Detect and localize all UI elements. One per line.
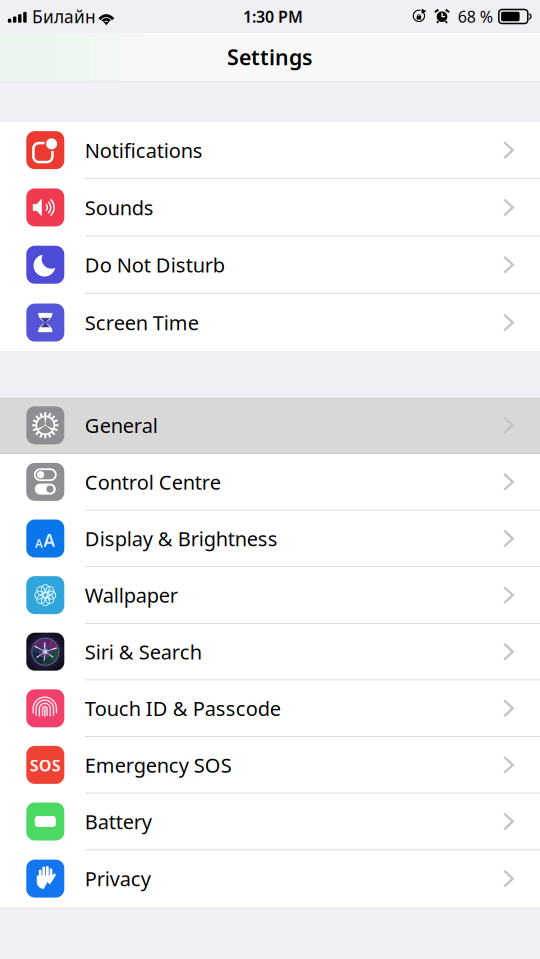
staticText: General	[85, 412, 158, 439]
staticText: Control Centre	[85, 469, 221, 495]
button[interactable]: Siri & Search	[0, 624, 540, 680]
button[interactable]: A	[0, 511, 540, 567]
staticText: Touch ID & Passcode	[85, 695, 281, 722]
staticText: Settings	[227, 43, 313, 71]
button[interactable]: Control Centre	[0, 454, 540, 511]
button[interactable]: Do Not Disturb	[0, 237, 540, 294]
staticText: Do Not Disturb	[85, 251, 225, 278]
button[interactable]: Battery	[0, 794, 540, 850]
staticText: Privacy	[85, 865, 151, 892]
staticText: Emergency SOS	[85, 752, 232, 778]
button[interactable]: Notifications	[0, 122, 540, 179]
button[interactable]: Screen Time	[0, 294, 540, 351]
staticText: A	[43, 528, 55, 551]
button[interactable]: Touch ID & Passcode	[0, 680, 540, 737]
staticText: 1:30 PM	[243, 6, 303, 27]
staticText: SOS	[30, 755, 61, 776]
button[interactable]: Wallpaper	[0, 567, 540, 624]
staticText: Screen Time	[85, 309, 199, 336]
staticText: Notifications	[85, 137, 203, 163]
staticText: Билайн	[32, 5, 96, 28]
staticText: Sounds	[85, 194, 154, 221]
staticText: A	[35, 536, 43, 551]
button[interactable]: SOS	[0, 737, 540, 794]
staticText: Siri & Search	[85, 638, 202, 665]
button[interactable]: Sounds	[0, 179, 540, 237]
staticText: Wallpaper	[85, 582, 178, 608]
staticText: Battery	[85, 808, 152, 835]
button[interactable]: General	[0, 397, 540, 454]
staticText: Display & Brightness	[85, 525, 278, 552]
staticText: 68 %	[458, 6, 493, 27]
button[interactable]: Privacy	[0, 850, 540, 907]
